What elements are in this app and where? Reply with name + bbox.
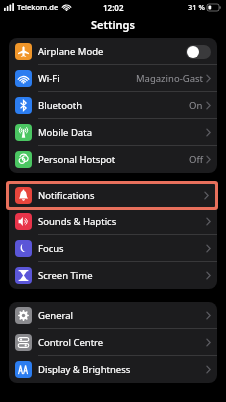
button[interactable]: Notifications bbox=[9, 181, 217, 208]
staticText: On bbox=[189, 99, 203, 112]
button[interactable]: Airplane Mode toggle bbox=[186, 45, 211, 59]
staticText: Notifications bbox=[38, 188, 206, 201]
staticText: Magazino-Gast bbox=[136, 72, 203, 85]
staticText: Settings bbox=[91, 17, 135, 32]
staticText: Sounds & Haptics bbox=[38, 215, 206, 228]
staticText: Mobile Data bbox=[38, 126, 206, 139]
button[interactable]: Personal Hotspot bbox=[9, 146, 217, 173]
staticText: 12:02 bbox=[103, 2, 124, 13]
button[interactable]: Screen Time bbox=[9, 262, 217, 289]
button[interactable]: Display & Brightness bbox=[9, 356, 217, 383]
staticText: 31 % bbox=[188, 2, 205, 12]
button[interactable]: Mobile Data bbox=[9, 119, 217, 146]
staticText: Control Centre bbox=[38, 336, 206, 349]
staticText: Telekom.de bbox=[17, 2, 59, 12]
staticText: Display & Brightness bbox=[38, 363, 206, 376]
staticText: Off bbox=[189, 153, 203, 166]
button[interactable]: General bbox=[9, 302, 217, 329]
staticText: Personal Hotspot bbox=[38, 153, 189, 166]
staticText: Airplane Mode bbox=[38, 45, 186, 58]
button[interactable]: Focus bbox=[9, 235, 217, 262]
staticText: Screen Time bbox=[38, 269, 206, 282]
button[interactable]: Bluetooth bbox=[9, 92, 217, 119]
button[interactable]: Wi-Fi bbox=[9, 65, 217, 92]
staticText: Bluetooth bbox=[38, 99, 189, 112]
button[interactable]: Control Centre bbox=[9, 329, 217, 356]
button[interactable]: Airplane Mode bbox=[9, 38, 217, 65]
staticText: General bbox=[38, 309, 206, 322]
staticText: Wi-Fi bbox=[38, 72, 136, 85]
staticText: Notifications bbox=[38, 189, 204, 202]
staticText: Focus bbox=[38, 242, 206, 255]
button[interactable]: Sounds & Haptics bbox=[9, 208, 217, 235]
